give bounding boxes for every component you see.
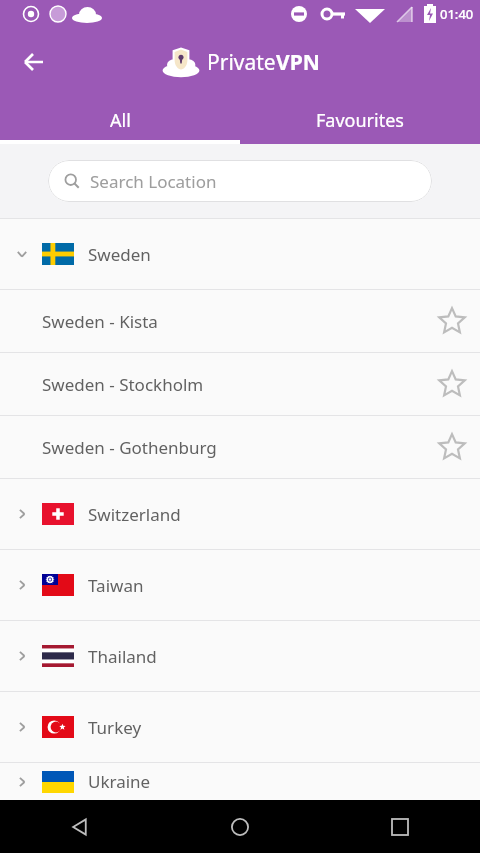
staticText: Search Location [90,170,217,193]
button[interactable]: Turkey [0,692,480,762]
staticText: VPN [276,48,320,77]
button[interactable]: Back [0,800,160,853]
button[interactable]: Ukraine [0,763,480,800]
button[interactable]: Switzerland [0,479,480,549]
staticText: Switzerland [88,503,181,526]
button[interactable]: Add to favourites [424,356,480,412]
staticText: Sweden - Gothenburg [42,436,424,459]
staticText: Turkey [88,716,142,739]
button[interactable]: Sweden - Gothenburg [0,416,480,478]
button[interactable]: Sweden [0,219,480,289]
button[interactable]: Add to favourites [424,419,480,475]
button[interactable]: Back [10,38,58,86]
button[interactable]: Favourites [240,96,480,144]
button[interactable]: Add to favourites [424,293,480,349]
staticText: All [110,108,131,133]
button[interactable]: Home [160,800,320,853]
button[interactable]: Recents [320,800,480,853]
staticText: Favourites [316,108,404,133]
button[interactable]: Sweden - Kista [0,290,480,352]
button[interactable]: Sweden - Stockholm [0,353,480,415]
button[interactable]: Taiwan [0,550,480,620]
button[interactable]: All [0,96,240,144]
button[interactable]: Thailand [0,621,480,691]
staticText: Taiwan [88,574,144,597]
staticText: Thailand [88,645,157,668]
staticText: 01:40 [440,5,474,23]
staticText: Ukraine [88,770,151,793]
staticText: Sweden - Stockholm [42,373,424,396]
staticText: Sweden - Kista [42,310,424,333]
staticText: Sweden [88,243,151,266]
button[interactable]: Search Location [48,160,432,202]
staticText: Private [207,48,276,77]
